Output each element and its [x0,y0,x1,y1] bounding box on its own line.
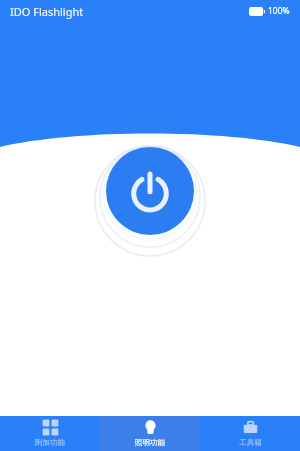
staticText: 100% [268,5,290,17]
button[interactable]: 照明功能 [100,416,200,451]
button[interactable]: Power toggle [95,136,205,246]
staticText: 附加功能 [35,438,65,447]
staticText: 照明功能 [135,438,165,447]
button[interactable]: 工具箱 [200,416,300,451]
staticText: 工具箱 [239,438,262,447]
button[interactable]: 附加功能 [0,416,100,451]
staticText: IDO Flashlight [10,4,84,19]
